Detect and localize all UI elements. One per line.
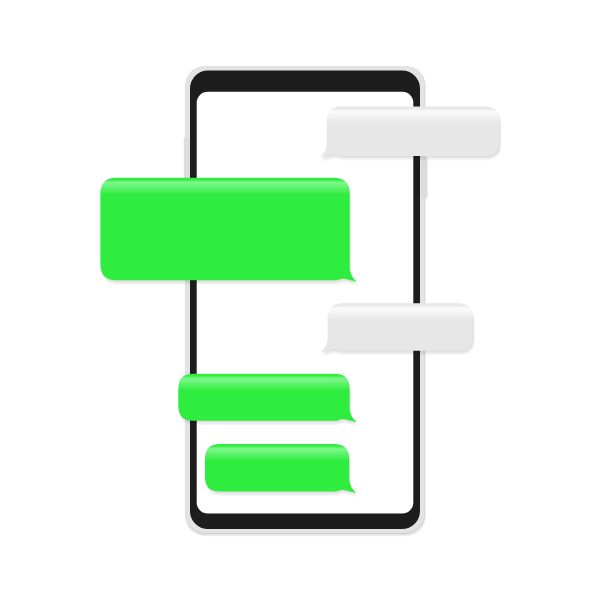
button[interactable]: Sent message — [205, 444, 349, 492]
button[interactable]: Sent message — [100, 178, 349, 280]
button[interactable]: Received message — [328, 303, 473, 351]
button[interactable]: Sent message — [178, 374, 349, 421]
button[interactable]: Received message — [327, 107, 500, 156]
